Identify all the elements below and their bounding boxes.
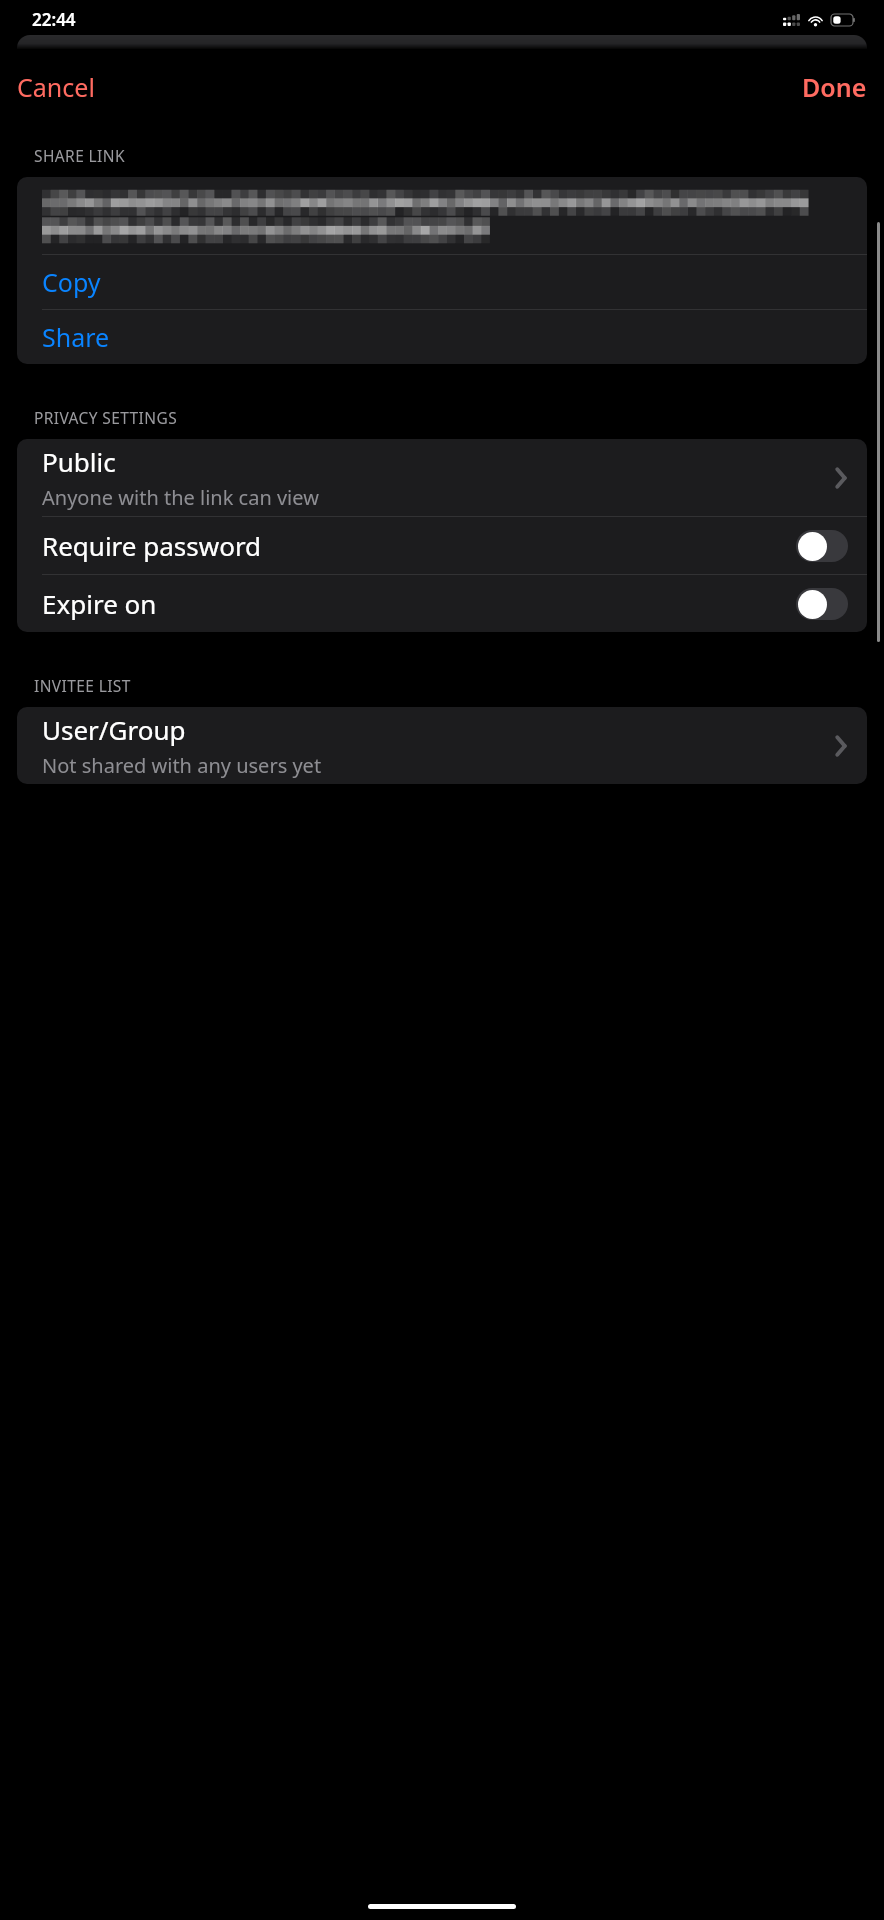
staticText: Cancel — [17, 70, 95, 104]
button[interactable]: Expire on — [17, 575, 867, 632]
staticText: Require password — [42, 528, 796, 563]
button[interactable]: Copy — [17, 255, 867, 309]
staticText: Public — [42, 444, 116, 479]
staticText: PRIVACY SETTINGS — [34, 407, 178, 428]
button[interactable]: Cancel — [0, 64, 109, 110]
staticText: Copy — [42, 265, 101, 299]
button[interactable]: User/Group — [17, 707, 867, 784]
staticText: SHARE LINK — [34, 145, 125, 166]
staticText: Expire on — [42, 586, 796, 621]
staticText: Anyone with the link can view — [42, 484, 319, 511]
other: Open — [834, 467, 847, 489]
staticText: INVITEE LIST — [34, 675, 131, 696]
button[interactable]: Require password — [17, 517, 867, 574]
other: Open — [834, 735, 847, 757]
button[interactable]: Toggle, off — [796, 530, 848, 562]
staticText: User/Group — [42, 712, 186, 747]
button[interactable]: Done — [788, 64, 884, 110]
staticText: Not shared with any users yet — [42, 752, 322, 779]
button[interactable]: Share — [17, 310, 867, 364]
button[interactable]: Toggle, off — [796, 588, 848, 620]
staticText: Share — [42, 320, 110, 354]
button[interactable]: Public — [17, 439, 867, 516]
staticText: 22:44 — [32, 8, 76, 31]
staticText: Done — [802, 70, 867, 104]
